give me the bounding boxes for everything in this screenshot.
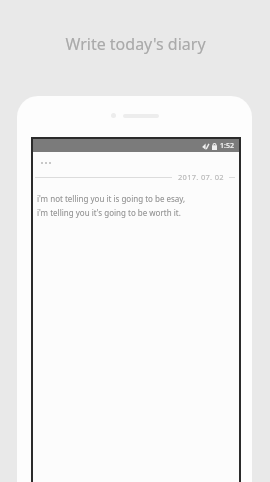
button[interactable]: i'm not telling you it is going to be es…	[33, 193, 239, 218]
staticText: i'm not telling you it is going to be es…	[37, 193, 186, 204]
button[interactable]: More options	[38, 159, 54, 167]
staticText: 1:52	[220, 141, 234, 151]
staticText: i'm telling you it's going to be worth i…	[37, 207, 181, 218]
staticText: 2017. 07. 02	[178, 172, 224, 182]
staticText: Write today's diary	[65, 33, 206, 55]
